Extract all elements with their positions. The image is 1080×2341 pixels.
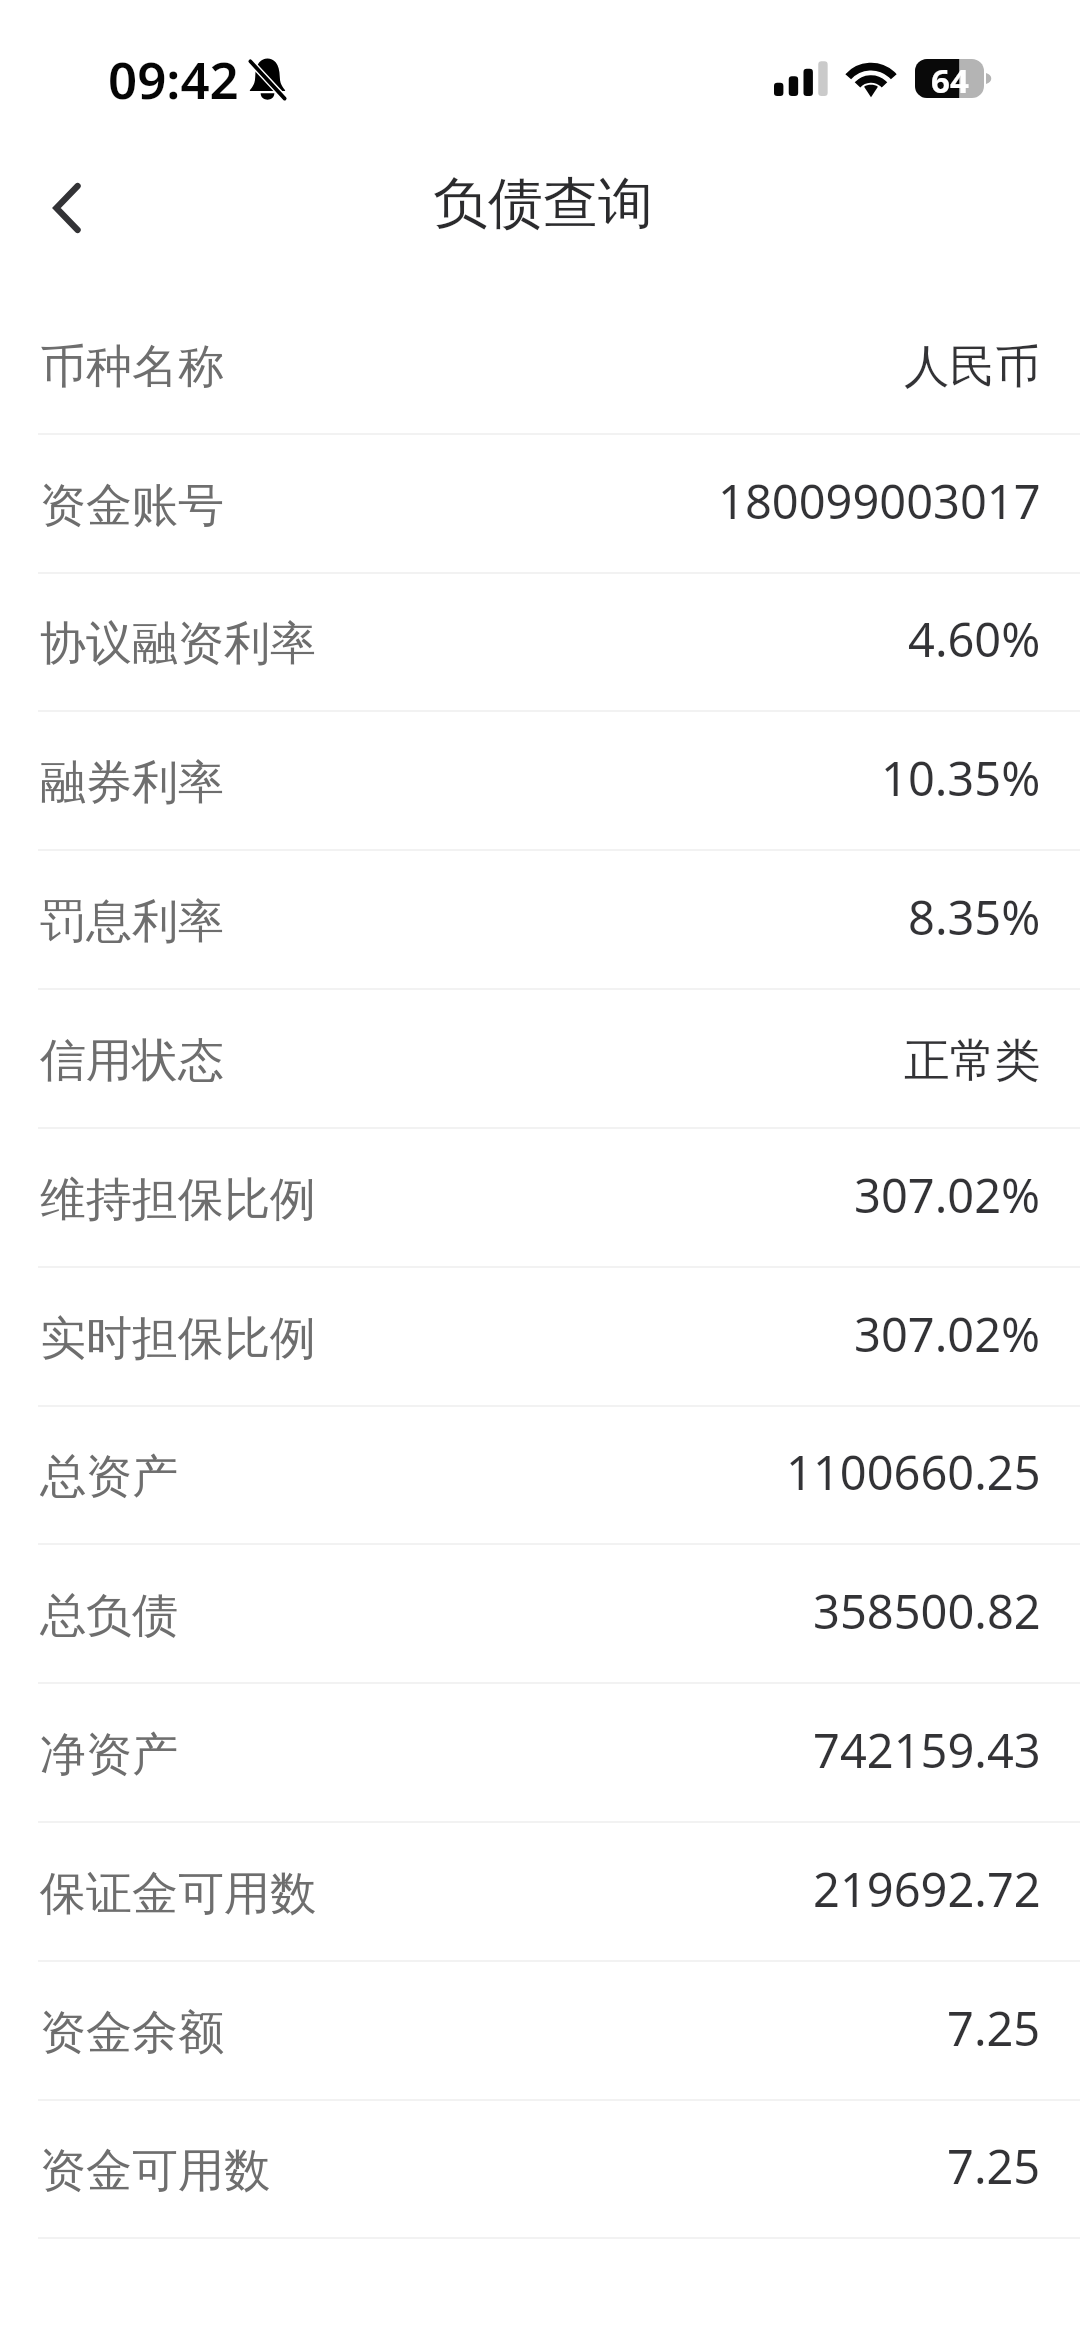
staticText: 358500.82 — [813, 1579, 1041, 1643]
button[interactable]: 币种名称 — [0, 296, 1080, 435]
staticText: 币种名称 — [40, 338, 224, 396]
button[interactable]: 信用状态 — [0, 990, 1080, 1129]
button[interactable]: 资金账号 — [0, 435, 1080, 574]
button[interactable]: 资金余额 — [0, 1962, 1080, 2101]
button[interactable]: Back — [8, 156, 108, 286]
staticText: 307.02% — [854, 1163, 1041, 1227]
staticText: 7.25 — [947, 2134, 1041, 2198]
staticText: 资金可用数 — [40, 2142, 270, 2200]
staticText: 10.35% — [881, 746, 1041, 810]
staticText: 实时担保比例 — [40, 1310, 316, 1368]
staticText: 罚息利率 — [40, 893, 224, 951]
button[interactable]: 协议融资利率 — [0, 574, 1080, 712]
staticText: 64 — [931, 58, 969, 97]
staticText: 净资产 — [40, 1726, 178, 1784]
staticText: 保证金可用数 — [40, 1865, 316, 1923]
staticText: 8.35% — [908, 885, 1041, 949]
button[interactable]: 保证金可用数 — [0, 1823, 1080, 1962]
staticText: 307.02% — [854, 1302, 1041, 1366]
button[interactable]: 罚息利率 — [0, 851, 1080, 990]
staticText: 4.60% — [908, 607, 1041, 671]
staticText: 总资产 — [40, 1448, 178, 1506]
staticText: 负债查询 — [433, 169, 653, 238]
staticText: 融券利率 — [40, 754, 224, 812]
staticText: 总负债 — [40, 1587, 178, 1645]
staticText: 资金账号 — [40, 477, 224, 535]
staticText: 正常类 — [904, 1032, 1041, 1089]
staticText: 219692.72 — [813, 1857, 1041, 1921]
button[interactable]: 维持担保比例 — [0, 1129, 1080, 1268]
staticText: 信用状态 — [40, 1032, 224, 1090]
staticText: 180099003017 — [718, 469, 1041, 533]
button[interactable]: 总负债 — [0, 1545, 1080, 1684]
button[interactable]: 资金可用数 — [0, 2101, 1080, 2239]
staticText: 742159.43 — [813, 1718, 1041, 1782]
staticText: 资金余额 — [40, 2004, 224, 2062]
button[interactable]: 净资产 — [0, 1684, 1080, 1823]
button[interactable]: 实时担保比例 — [0, 1268, 1080, 1407]
staticText: 09:42 — [108, 44, 239, 113]
button[interactable]: 融券利率 — [0, 712, 1080, 851]
staticText: 1100660.25 — [786, 1440, 1041, 1504]
staticText: 7.25 — [947, 1996, 1041, 2060]
button[interactable]: 总资产 — [0, 1407, 1080, 1545]
staticText: 人民币 — [904, 338, 1041, 395]
staticText: 维持担保比例 — [40, 1171, 316, 1229]
staticText: 协议融资利率 — [40, 615, 316, 673]
